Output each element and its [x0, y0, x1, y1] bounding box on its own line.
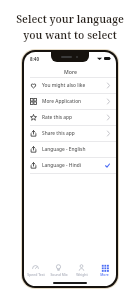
- staticText: 8:40: [30, 56, 39, 62]
- staticText: Sound Mix: [50, 272, 68, 277]
- button[interactable]: Language - English: [24, 142, 116, 157]
- staticText: Rate this app: [42, 114, 107, 121]
- staticText: More: [64, 68, 77, 75]
- button[interactable]: More: [93, 261, 116, 279]
- staticText: Language - English: [42, 146, 110, 153]
- staticText: Speed Test: [27, 272, 45, 277]
- button[interactable]: Rate this app: [24, 110, 116, 125]
- button[interactable]: Speed Test: [24, 261, 47, 279]
- staticText: More Application: [42, 98, 107, 105]
- button[interactable]: You might also like: [24, 78, 116, 93]
- button[interactable]: Sound Mix: [47, 261, 70, 279]
- staticText: Language - Hindi: [42, 162, 105, 169]
- staticText: You might also like: [42, 82, 107, 89]
- button[interactable]: Weight: [70, 261, 93, 279]
- staticText: Select your language: [16, 12, 124, 26]
- button[interactable]: Language - Hindi: [24, 158, 116, 173]
- staticText: you want to select: [23, 28, 117, 42]
- staticText: More: [100, 272, 109, 277]
- button[interactable]: Share this app: [24, 126, 116, 141]
- staticText: Weight: [76, 272, 88, 277]
- button[interactable]: More Application: [24, 94, 116, 109]
- staticText: Share this app: [42, 130, 107, 137]
